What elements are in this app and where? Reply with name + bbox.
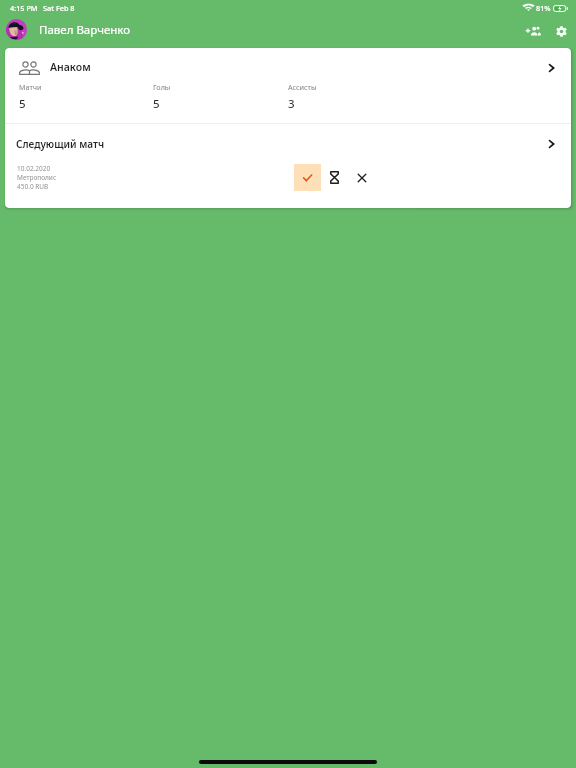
staticText: Sat Feb 8 xyxy=(43,3,75,13)
staticText: 81% xyxy=(536,3,551,13)
button[interactable]: Анаком xyxy=(5,48,571,77)
staticText: Следующий матч xyxy=(16,137,105,151)
button[interactable]: Not going xyxy=(348,164,375,191)
staticText: 5 xyxy=(19,96,26,112)
staticText: Голы xyxy=(153,82,171,92)
button[interactable]: Maybe xyxy=(321,164,348,191)
staticText: 450.0 RUB xyxy=(17,182,49,191)
staticText: Анаком xyxy=(50,60,91,74)
staticText: Ассисты xyxy=(288,82,317,92)
staticText: Павел Варченко xyxy=(39,22,131,38)
button[interactable]: Add player xyxy=(521,18,545,44)
staticText: 3 xyxy=(288,96,295,112)
staticText: Метрополис xyxy=(17,173,57,182)
button[interactable]: Следующий матч xyxy=(5,124,571,157)
staticText: 4:15 PM xyxy=(10,3,38,13)
button[interactable]: Going xyxy=(294,164,321,191)
button[interactable]: Profile photo xyxy=(6,19,27,40)
staticText: Матчи xyxy=(19,82,42,92)
button[interactable]: Settings xyxy=(549,18,573,44)
staticText: 10.02.2020 xyxy=(17,164,51,173)
staticText: 5 xyxy=(153,96,160,112)
